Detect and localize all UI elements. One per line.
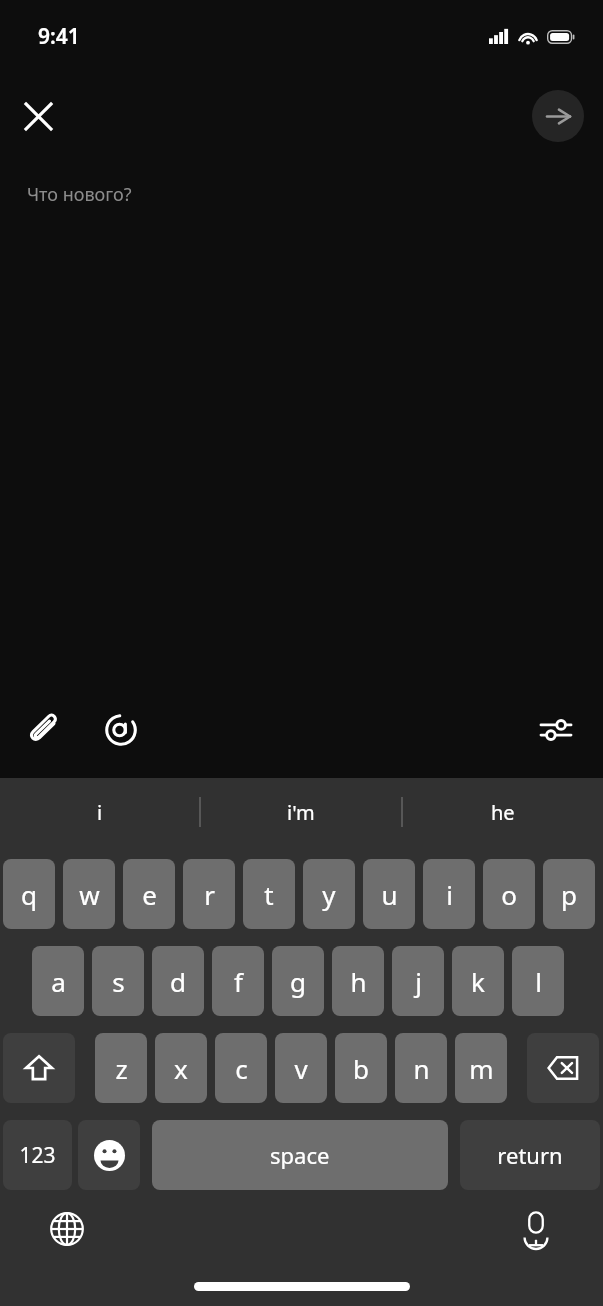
staticText: f — [234, 964, 243, 999]
button[interactable]: Shift — [3, 1033, 75, 1103]
button[interactable]: m — [455, 1033, 507, 1103]
staticText: u — [381, 877, 398, 912]
button[interactable]: w — [63, 859, 115, 929]
staticText: d — [170, 964, 186, 999]
button[interactable]: o — [483, 859, 535, 929]
button[interactable]: y — [303, 859, 355, 929]
button[interactable]: c — [215, 1033, 267, 1103]
staticText: g — [290, 964, 306, 999]
button[interactable]: v — [275, 1033, 327, 1103]
staticText: s — [112, 964, 125, 999]
button[interactable]: e — [123, 859, 175, 929]
staticText: i'm — [287, 799, 315, 826]
staticText: 123 — [19, 1141, 56, 1170]
button[interactable]: n — [395, 1033, 447, 1103]
button[interactable]: Backspace — [527, 1033, 599, 1103]
staticText: w — [79, 877, 100, 912]
button[interactable]: f — [212, 946, 264, 1016]
button[interactable]: r — [183, 859, 235, 929]
staticText: b — [353, 1051, 369, 1086]
button[interactable]: d — [152, 946, 204, 1016]
button[interactable]: j — [392, 946, 444, 1016]
button[interactable]: Close — [16, 94, 60, 138]
staticText: n — [413, 1051, 430, 1086]
staticText: k — [471, 964, 485, 999]
button[interactable]: a — [32, 946, 84, 1016]
staticText: i — [446, 877, 453, 912]
button[interactable]: space — [152, 1120, 448, 1190]
button[interactable]: Attach — [20, 705, 70, 755]
staticText: l — [535, 964, 542, 999]
staticText: z — [115, 1051, 128, 1086]
button[interactable]: q — [3, 859, 55, 929]
button[interactable]: z — [95, 1033, 147, 1103]
button[interactable]: Emoji — [78, 1120, 140, 1190]
staticText: a — [51, 964, 66, 999]
button[interactable]: i'm — [201, 778, 401, 846]
button[interactable]: i — [0, 778, 199, 846]
button[interactable]: u — [363, 859, 415, 929]
staticText: space — [270, 1140, 330, 1170]
button[interactable]: x — [155, 1033, 207, 1103]
staticText: 9:41 — [38, 22, 80, 51]
staticText: j — [415, 964, 422, 999]
button[interactable]: Mention — [96, 705, 146, 755]
staticText: Что нового? — [27, 182, 132, 207]
button[interactable]: b — [335, 1033, 387, 1103]
button[interactable]: he — [403, 778, 603, 846]
button[interactable]: Change keyboard language — [42, 1204, 92, 1254]
staticText: i — [97, 799, 103, 826]
button[interactable]: i — [423, 859, 475, 929]
staticText: c — [235, 1051, 248, 1086]
button[interactable]: 123 — [3, 1120, 72, 1190]
staticText: e — [142, 877, 157, 912]
button[interactable]: t — [243, 859, 295, 929]
staticText: o — [501, 877, 517, 912]
button[interactable]: s — [92, 946, 144, 1016]
staticText: p — [561, 877, 577, 912]
button[interactable]: Settings — [531, 705, 581, 755]
staticText: h — [350, 964, 367, 999]
staticText: m — [469, 1051, 494, 1086]
button[interactable]: k — [452, 946, 504, 1016]
button[interactable]: h — [332, 946, 384, 1016]
button[interactable]: l — [512, 946, 564, 1016]
staticText: v — [294, 1051, 308, 1086]
button[interactable]: return — [460, 1120, 600, 1190]
button[interactable]: Dictation — [511, 1204, 561, 1254]
button[interactable]: p — [543, 859, 595, 929]
staticText: x — [174, 1051, 188, 1086]
button[interactable]: Send — [532, 90, 584, 142]
staticText: y — [322, 877, 336, 912]
staticText: q — [21, 877, 37, 912]
staticText: t — [264, 877, 274, 912]
staticText: r — [204, 877, 215, 912]
staticText: return — [497, 1140, 563, 1170]
staticText: he — [491, 799, 515, 826]
button[interactable]: g — [272, 946, 324, 1016]
